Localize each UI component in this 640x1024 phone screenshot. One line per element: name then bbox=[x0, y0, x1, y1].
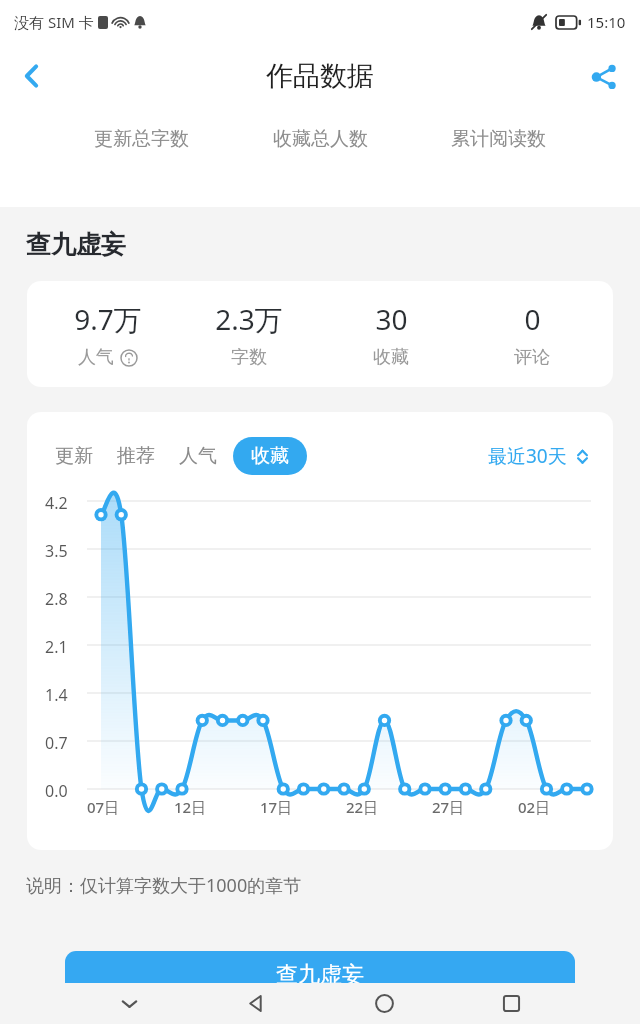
button[interactable]: Back bbox=[6, 50, 58, 102]
staticText: 4.2 bbox=[45, 492, 68, 514]
staticText: 收藏 bbox=[251, 444, 289, 468]
staticText: 12日 bbox=[174, 797, 207, 817]
button[interactable]: 最近30天 bbox=[488, 443, 591, 469]
staticText: 30 bbox=[375, 300, 408, 338]
staticText: 更新 bbox=[55, 444, 93, 468]
staticText: 字数 bbox=[231, 346, 267, 369]
staticText: 人气 bbox=[78, 346, 114, 369]
staticText: 评论 bbox=[514, 346, 550, 369]
staticText: 2.3万 bbox=[215, 300, 283, 338]
button[interactable]: 更新总字数 bbox=[94, 127, 189, 151]
staticText: 27日 bbox=[432, 797, 465, 817]
staticText: 2.8 bbox=[45, 588, 68, 610]
staticText: 15:10 bbox=[587, 12, 626, 32]
button[interactable]: 2.3万 bbox=[189, 300, 309, 369]
staticText: 查九虚妄 bbox=[26, 229, 126, 260]
button[interactable]: 累计阅读数 bbox=[451, 127, 546, 151]
staticText: 17日 bbox=[260, 797, 293, 817]
button[interactable]: 人气 bbox=[179, 437, 217, 475]
staticText: 推荐 bbox=[117, 444, 155, 468]
button[interactable]: Recent apps bbox=[488, 983, 534, 1024]
staticText: 0.7 bbox=[45, 732, 68, 754]
staticText: 没有 SIM 卡 bbox=[14, 12, 94, 32]
staticText: 02日 bbox=[518, 797, 551, 817]
staticText: 1.4 bbox=[45, 684, 68, 706]
button[interactable]: Back bbox=[233, 983, 279, 1024]
button[interactable]: 查九虚妄 bbox=[65, 951, 575, 983]
staticText: 更新总字数 bbox=[94, 127, 189, 151]
button[interactable]: 推荐 bbox=[117, 437, 155, 475]
button[interactable]: 9.7万 bbox=[27, 281, 613, 387]
button[interactable]: Home bbox=[361, 983, 407, 1024]
button[interactable]: 0 bbox=[472, 300, 592, 369]
staticText: 2.1 bbox=[45, 636, 68, 658]
staticText: 0 bbox=[524, 300, 541, 338]
staticText: 收藏总人数 bbox=[273, 127, 368, 151]
staticText: 最近30天 bbox=[488, 443, 567, 469]
staticText: 人气 bbox=[179, 444, 217, 468]
staticText: 作品数据 bbox=[266, 59, 374, 93]
staticText: 07日 bbox=[87, 797, 120, 817]
staticText: 22日 bbox=[346, 797, 379, 817]
staticText: 累计阅读数 bbox=[451, 127, 546, 151]
button[interactable]: 更新 bbox=[55, 437, 93, 475]
staticText: 9.7万 bbox=[74, 300, 142, 338]
button[interactable]: 收藏总人数 bbox=[273, 127, 368, 151]
button[interactable]: Share bbox=[578, 50, 630, 102]
staticText: 0.0 bbox=[45, 780, 68, 802]
button[interactable]: 30 bbox=[331, 300, 451, 369]
staticText: 收藏 bbox=[373, 346, 409, 369]
staticText: 3.5 bbox=[45, 540, 68, 562]
staticText: 查九虚妄 bbox=[276, 961, 364, 983]
button[interactable]: Hide keyboard bbox=[106, 983, 152, 1024]
staticText: 说明：仅计算字数大于1000的章节 bbox=[26, 873, 302, 898]
button[interactable]: 9.7万 bbox=[48, 300, 168, 369]
button[interactable]: 收藏 bbox=[233, 437, 307, 475]
